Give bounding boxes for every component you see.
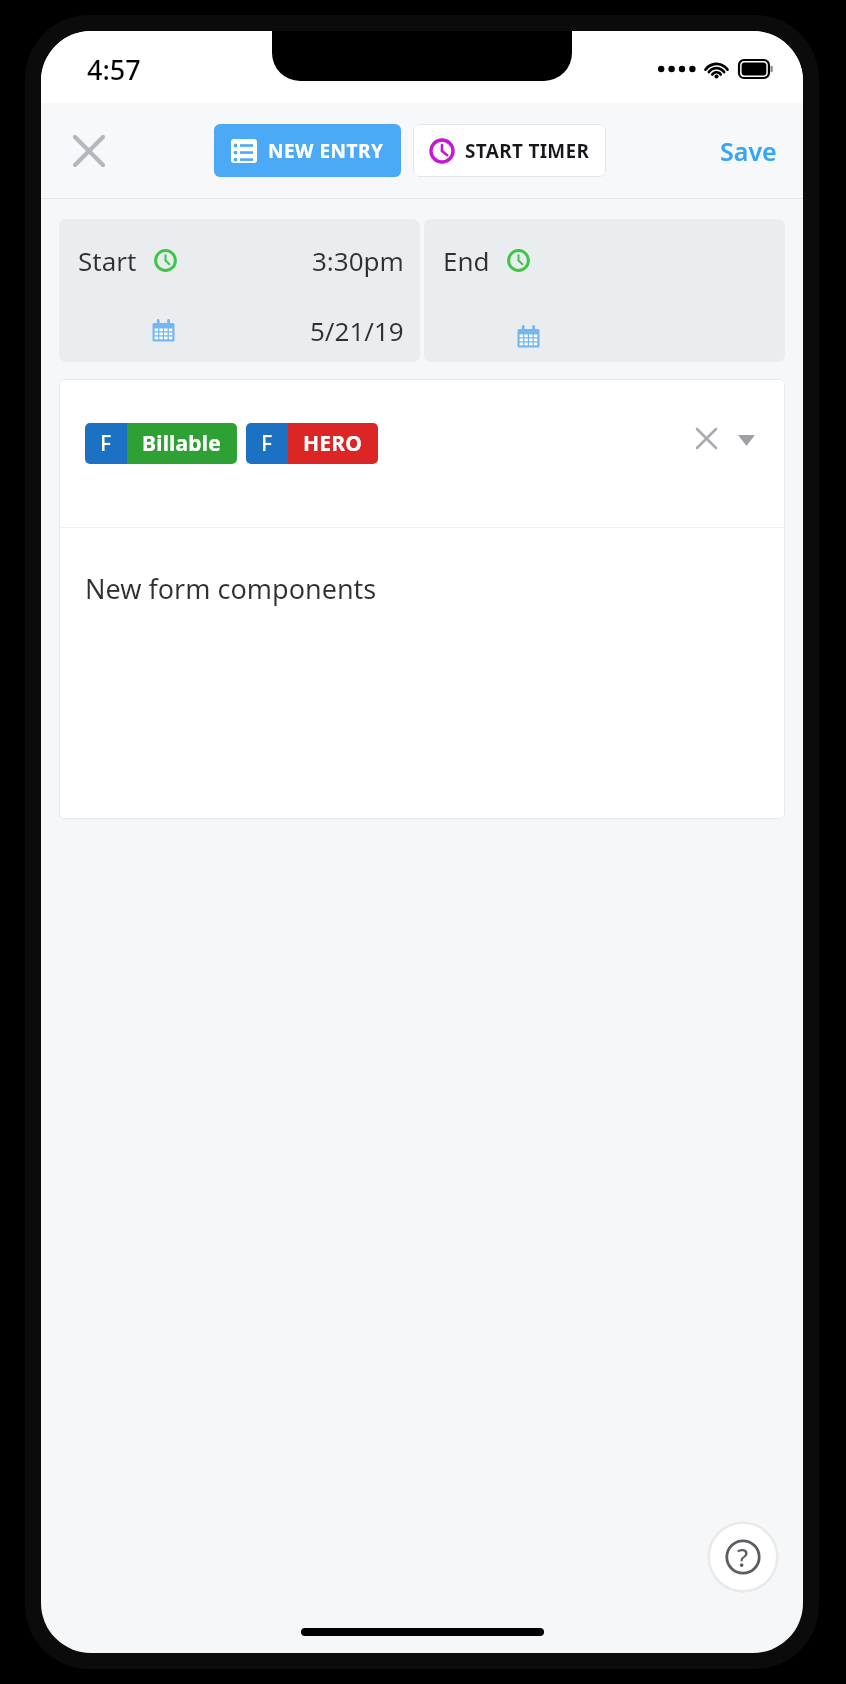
button[interactable]: New form components <box>59 528 785 819</box>
button[interactable]: START TIMER <box>413 124 606 177</box>
staticText: Save <box>720 134 777 168</box>
staticText: Start <box>78 243 137 278</box>
staticText: 5/21/19 <box>310 313 404 348</box>
button[interactable]: Remove tags <box>689 421 723 455</box>
staticText: NEW ENTRY <box>268 138 384 164</box>
staticText: Billable <box>142 429 222 458</box>
button[interactable]: Help <box>707 1521 779 1593</box>
button[interactable]: End <box>424 219 785 362</box>
staticText: F <box>261 429 273 458</box>
staticText: ? <box>737 1540 749 1574</box>
staticText: End <box>443 243 490 278</box>
button[interactable]: Expand <box>729 423 763 457</box>
staticText: HERO <box>303 429 363 458</box>
button[interactable]: Save <box>708 124 789 178</box>
button[interactable]: F <box>85 423 237 464</box>
button[interactable]: Close <box>61 123 117 179</box>
button[interactable]: F <box>59 379 785 527</box>
button[interactable]: NEW ENTRY <box>214 124 401 177</box>
staticText: 3:30pm <box>312 243 404 278</box>
button[interactable]: Start <box>59 219 420 362</box>
button[interactable]: F <box>246 423 378 464</box>
staticText: New form components <box>85 570 377 607</box>
staticText: START TIMER <box>465 138 590 164</box>
staticText: F <box>100 429 112 458</box>
staticText: 4:57 <box>87 51 141 88</box>
